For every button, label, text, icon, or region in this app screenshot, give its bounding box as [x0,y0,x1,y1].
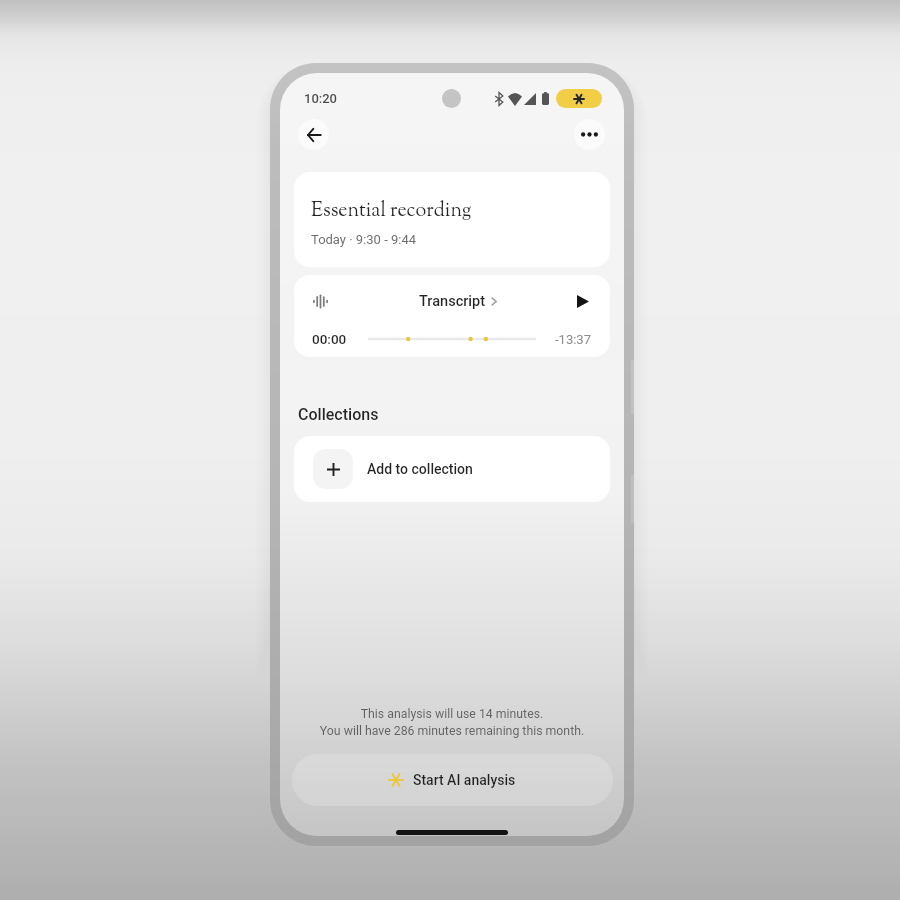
staticText: This analysis will use 14 minutes. You w… [280,707,624,738]
button[interactable]: Back [298,119,329,150]
staticText: -13:37 [555,332,591,347]
staticText: 00:00 [312,331,347,347]
button[interactable]: Start AI analysis [292,754,613,806]
staticText: 10:20 [304,91,338,106]
staticText: Collections [298,405,379,424]
button[interactable]: Play [569,287,597,315]
staticText: Essential recording [311,197,472,225]
staticText: Today · 9:30 - 9:44 [311,232,417,247]
button[interactable]: More options [574,119,605,150]
staticText: Add to collection [367,461,473,477]
staticText: Start AI analysis [413,772,516,788]
button[interactable]: AI assistant [556,89,602,108]
staticText: Transcript [419,293,486,310]
button[interactable]: Essential recording [294,172,610,267]
button[interactable]: Add to collection [294,436,610,502]
button[interactable]: Transcript [419,293,497,310]
